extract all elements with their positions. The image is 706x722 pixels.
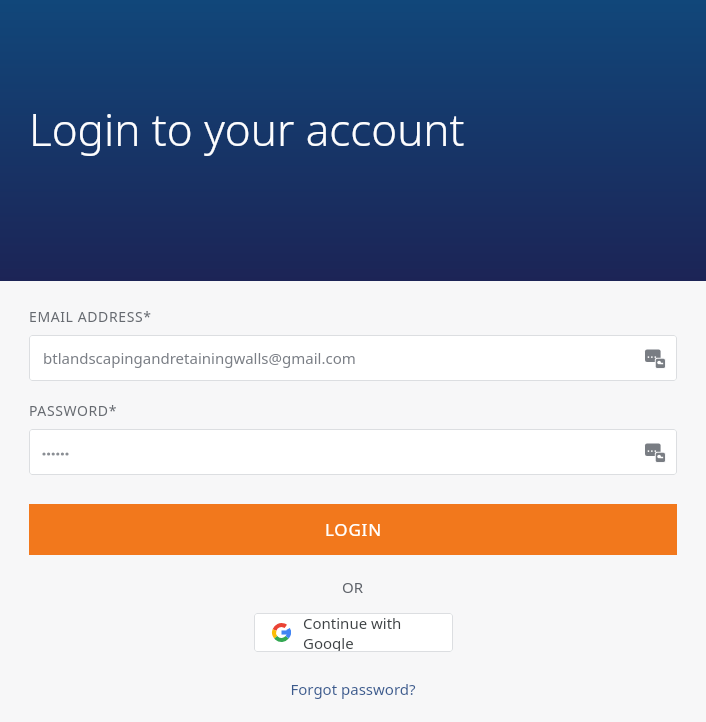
staticText: LOGIN: [325, 518, 382, 541]
other: Autofill password: [645, 348, 665, 368]
other: Autofill password: [645, 442, 665, 462]
button[interactable]: Autofill password: [29, 429, 677, 475]
staticText: Login to your account: [29, 99, 465, 159]
staticText: OR: [342, 577, 364, 597]
staticText: Continue with Google: [303, 613, 435, 652]
staticText: Forgot password?: [290, 679, 416, 699]
staticText: EMAIL ADDRESS*: [29, 307, 152, 326]
button[interactable]: Forgot password?: [284, 676, 422, 702]
staticText: PASSWORD*: [29, 401, 117, 420]
button[interactable]: LOGIN: [29, 504, 677, 555]
button[interactable]: btlandscapingandretainingwalls@gmail.com: [29, 335, 677, 381]
staticText: btlandscapingandretainingwalls@gmail.com: [43, 348, 356, 368]
button[interactable]: Continue with Google: [254, 613, 453, 652]
